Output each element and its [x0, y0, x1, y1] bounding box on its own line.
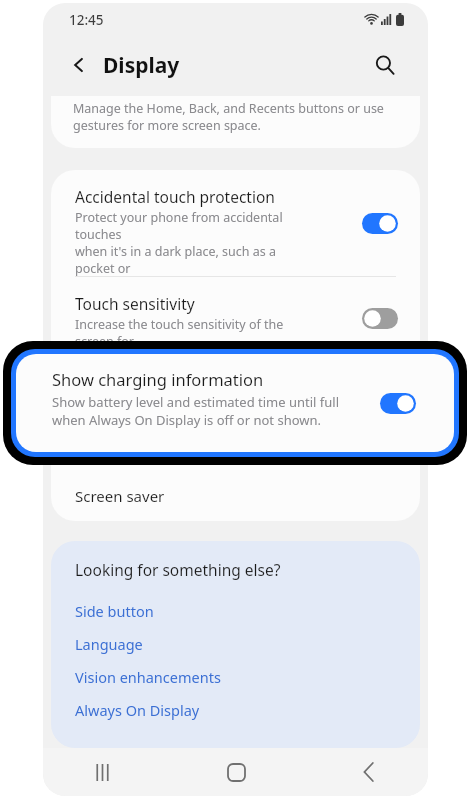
button[interactable]: Accidental touch protection	[51, 170, 420, 276]
staticText: Looking for something else?	[75, 559, 281, 580]
button[interactable]: Home	[213, 749, 259, 795]
button[interactable]: Back	[346, 749, 392, 795]
button[interactable]: Always On Display	[51, 693, 420, 726]
staticText: Screen saver	[75, 486, 165, 506]
button[interactable]: Show charging information	[16, 354, 454, 452]
staticText: Protect your phone from accidental touch…	[75, 209, 310, 276]
staticText: Always On Display	[75, 700, 200, 720]
staticText: Touch sensitivity	[75, 293, 195, 314]
button[interactable]: Vision enhancements	[51, 660, 420, 693]
staticText: Show charging information	[75, 375, 274, 396]
button[interactable]: Search	[368, 48, 402, 82]
staticText: Show battery level and estimated time un…	[75, 398, 310, 466]
button[interactable]: Side button	[51, 594, 420, 627]
staticText: Show battery level and estimated time un…	[52, 393, 339, 429]
button[interactable]: Language	[51, 627, 420, 660]
button[interactable]: Manage the Home, Back, and Recents butto…	[51, 96, 420, 148]
staticText: Show charging information	[52, 368, 264, 390]
staticText: Accidental touch protection	[75, 186, 275, 207]
staticText: Side button	[75, 601, 154, 621]
staticText: Vision enhancements	[75, 667, 221, 687]
button[interactable]: Back	[63, 49, 95, 81]
staticText: Manage the Home, Back, and Recents butto…	[73, 100, 384, 134]
button[interactable]: Screen saver	[51, 471, 420, 521]
staticText: Display	[103, 51, 180, 80]
staticText: Increase the touch sensitivity of the sc…	[75, 316, 310, 359]
button[interactable]: Recents	[79, 749, 125, 795]
button[interactable]: Show charging information	[51, 359, 420, 471]
staticText: 12:45	[69, 11, 104, 29]
staticText: Language	[75, 634, 143, 654]
button[interactable]: Touch sensitivity	[51, 277, 420, 359]
